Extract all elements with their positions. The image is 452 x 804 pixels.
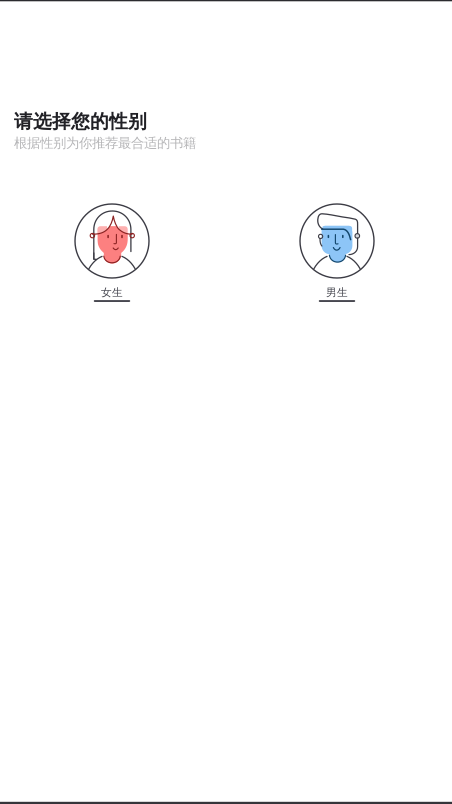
staticText: 请选择您的性别: [14, 110, 147, 133]
button[interactable]: 男生: [299, 203, 375, 306]
staticText: 女生: [101, 286, 123, 299]
button[interactable]: 女生: [74, 203, 150, 306]
staticText: 男生: [326, 286, 348, 299]
staticText: 根据性别为你推荐最合适的书籍: [14, 135, 196, 151]
